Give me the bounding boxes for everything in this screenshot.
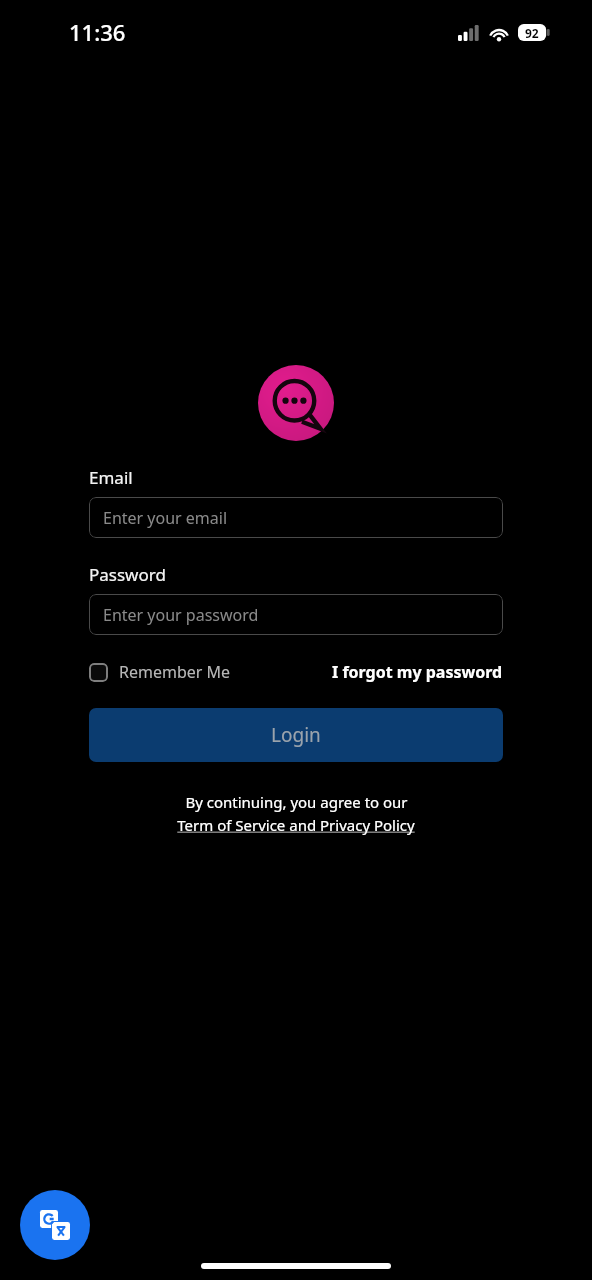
staticText: Remember Me — [119, 661, 231, 683]
staticText: Email — [89, 466, 133, 489]
button[interactable]: Login — [89, 708, 503, 762]
staticText: Login — [271, 722, 321, 748]
staticText: Term of Service and Privacy Policy — [177, 815, 415, 835]
staticText: Password — [89, 563, 166, 586]
button[interactable]: Translate — [20, 1190, 90, 1260]
button[interactable]: I forgot my password — [332, 657, 503, 687]
button[interactable]: Enter your email — [89, 497, 503, 538]
staticText: 11:36 — [69, 17, 126, 47]
button[interactable]: Enter your password — [89, 594, 503, 635]
staticText: By continuing, you agree to our — [185, 792, 408, 812]
staticText: Enter your email — [103, 507, 228, 529]
button[interactable]: Term of Service and Privacy Policy — [177, 815, 415, 835]
button[interactable]: Remember Me — [89, 657, 231, 687]
staticText: Enter your password — [103, 604, 259, 626]
staticText: I forgot my password — [332, 661, 503, 683]
staticText: 92 — [525, 25, 539, 41]
